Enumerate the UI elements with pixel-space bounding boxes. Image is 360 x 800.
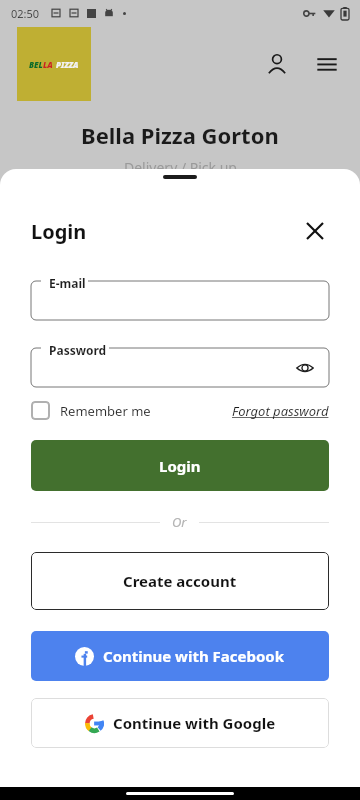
button[interactable]: Create account <box>31 552 329 610</box>
staticText: Remember me <box>60 402 151 420</box>
button[interactable]: Bella Pizza logo <box>17 27 91 101</box>
staticText: Login <box>31 218 87 245</box>
staticText: Delivery / Pick up <box>124 158 237 177</box>
button[interactable]: Continue with Google <box>31 698 329 748</box>
button[interactable]: Close <box>301 217 329 245</box>
staticText: BEL <box>29 59 43 70</box>
staticText: Continue with Google <box>113 713 276 733</box>
button[interactable]: Remember me <box>31 401 151 420</box>
button[interactable]: Show password <box>293 356 317 380</box>
button[interactable]: Continue with Facebook <box>31 631 329 681</box>
staticText: Login <box>159 456 201 476</box>
staticText: Continue with Facebook <box>103 646 285 666</box>
staticText: Forgot password <box>232 402 329 420</box>
staticText: E-mail <box>49 275 86 291</box>
button[interactable]: Account <box>261 48 293 80</box>
staticText: LA <box>43 59 53 70</box>
button[interactable]: Forgot password <box>232 402 329 420</box>
staticText: Bella Pizza Gorton <box>81 120 279 150</box>
button[interactable]: Menu <box>311 48 343 80</box>
button[interactable]: Login <box>31 440 329 491</box>
staticText: Or <box>172 513 187 531</box>
staticText: Create account <box>123 571 237 591</box>
staticText: PIZZA <box>56 59 79 70</box>
staticText: Password <box>49 342 107 358</box>
staticText: 02:50 <box>11 6 40 21</box>
